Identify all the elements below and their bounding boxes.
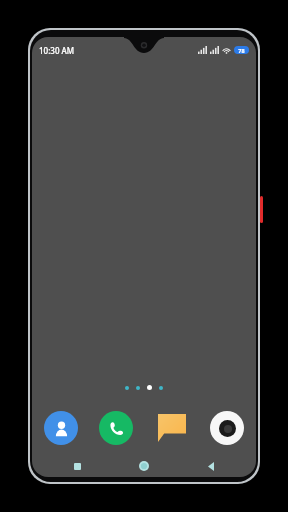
button[interactable]: Messages: [155, 411, 189, 445]
button[interactable]: Back: [202, 457, 220, 475]
button[interactable]: Recent apps: [68, 457, 86, 475]
button[interactable]: Camera: [210, 411, 244, 445]
staticText: 10:30 AM: [39, 45, 75, 56]
button[interactable]: Home: [135, 457, 153, 475]
button[interactable]: Contacts: [44, 411, 78, 445]
button[interactable]: Phone: [99, 411, 133, 445]
staticText: 78: [238, 47, 245, 54]
